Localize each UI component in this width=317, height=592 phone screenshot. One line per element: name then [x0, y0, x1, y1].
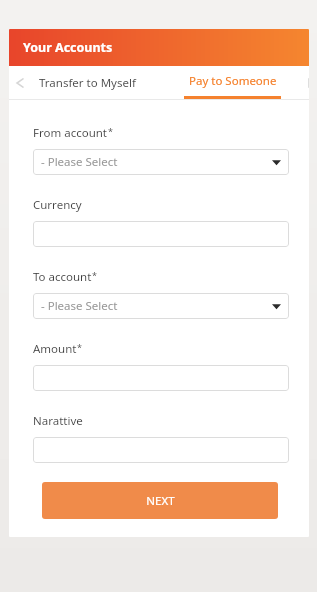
button[interactable]	[33, 365, 289, 391]
staticText: NEXT	[146, 493, 175, 509]
button[interactable]: Your Accounts	[9, 29, 309, 66]
staticText: Currency	[33, 197, 82, 213]
staticText: *	[108, 125, 113, 137]
staticText: *	[77, 341, 82, 353]
staticText: - Please Select	[41, 154, 118, 170]
button[interactable]	[33, 437, 289, 463]
button[interactable]: NEXT	[42, 482, 278, 519]
staticText: - Please Select	[41, 298, 118, 314]
staticText: Your Accounts	[23, 39, 113, 56]
staticText: To account	[33, 269, 92, 285]
button[interactable]: Previous tab	[9, 75, 31, 91]
staticText: From account	[33, 125, 108, 141]
button[interactable]: Pay to Someone	[156, 66, 309, 99]
button[interactable]: - Please Select	[33, 293, 289, 319]
button[interactable]: Transfer to Myself	[31, 66, 144, 99]
staticText: Pay to Someone	[189, 73, 277, 89]
staticText: Narattive	[33, 413, 83, 429]
staticText: Transfer to Myself	[39, 75, 136, 91]
button[interactable]: - Please Select	[33, 149, 289, 175]
staticText: Amount	[33, 341, 77, 357]
button[interactable]	[33, 221, 289, 247]
staticText: *	[92, 269, 97, 281]
